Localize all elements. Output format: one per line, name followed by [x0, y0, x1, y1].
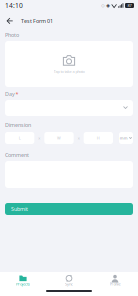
staticText: H: [97, 135, 100, 141]
staticText: Day: [5, 90, 15, 98]
staticText: ◈: [106, 2, 110, 9]
button[interactable]: Back: [3, 14, 17, 28]
staticText: Comment: [5, 151, 29, 159]
staticText: ◌: [101, 2, 104, 9]
staticText: Sync: [65, 281, 73, 287]
staticText: Projects: [16, 281, 30, 287]
staticText: 87: [127, 3, 131, 8]
staticText: Submit: [11, 205, 28, 213]
staticText: Photo: [5, 31, 19, 39]
button[interactable]: Projects: [0, 272, 46, 289]
staticText: 14:10: [5, 1, 23, 10]
staticText: Dimension: [5, 121, 31, 129]
staticText: Tap to take a photo: [53, 69, 84, 74]
button[interactable]: Sync: [46, 272, 92, 289]
button[interactable]: Submit: [5, 203, 133, 215]
staticText: W: [57, 135, 61, 141]
staticText: Profile: [109, 281, 120, 287]
button[interactable]: Tap to take a photo: [5, 41, 133, 87]
staticText: Test Form 01: [21, 17, 53, 25]
button[interactable]: [5, 100, 133, 116]
button[interactable]: W: [44, 132, 74, 144]
button[interactable]: Profile: [92, 272, 138, 289]
staticText: x: [38, 135, 40, 141]
button[interactable]: mm: [119, 132, 133, 144]
button[interactable]: H: [84, 132, 113, 144]
staticText: mm: [120, 135, 128, 141]
staticText: x: [78, 135, 80, 141]
staticText: *: [15, 90, 18, 98]
staticText: L: [19, 135, 21, 141]
